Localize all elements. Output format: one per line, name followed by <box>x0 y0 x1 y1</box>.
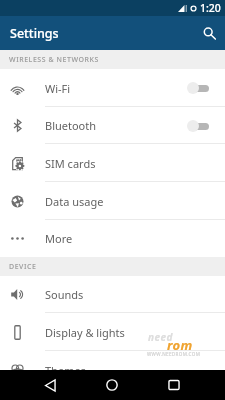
staticText: rom <box>167 336 193 354</box>
button[interactable]: Sounds <box>0 276 225 313</box>
button[interactable]: Data usage <box>0 182 225 220</box>
staticText: More <box>45 231 73 246</box>
staticText: DEVICE <box>9 262 37 272</box>
staticText: need <box>148 330 173 344</box>
staticText: 1:20 <box>200 1 221 15</box>
staticText: SIM cards <box>45 156 96 171</box>
staticText: WWW.NEEDROM.COM <box>147 351 201 357</box>
staticText: Settings <box>10 25 59 42</box>
button[interactable]: More <box>0 220 225 257</box>
button[interactable]: Display & lights <box>0 313 225 351</box>
staticText: Bluetooth <box>45 118 97 133</box>
button[interactable]: Wi-Fi <box>0 69 225 107</box>
staticText: Themes <box>45 363 86 378</box>
button[interactable]: Recent apps <box>158 370 190 400</box>
button[interactable]: Bluetooth <box>0 107 225 144</box>
button[interactable]: Search <box>197 21 221 45</box>
staticText: Display & lights <box>45 325 125 340</box>
staticText: WIRELESS & NETWORKS <box>9 55 99 65</box>
button[interactable]: Back <box>34 370 66 400</box>
staticText: Sounds <box>45 287 84 302</box>
button[interactable]: Home <box>96 370 128 400</box>
staticText: Data usage <box>45 194 104 209</box>
button[interactable]: SIM cards <box>0 144 225 182</box>
button[interactable]: Themes <box>0 351 225 389</box>
staticText: Wi-Fi <box>45 81 71 96</box>
